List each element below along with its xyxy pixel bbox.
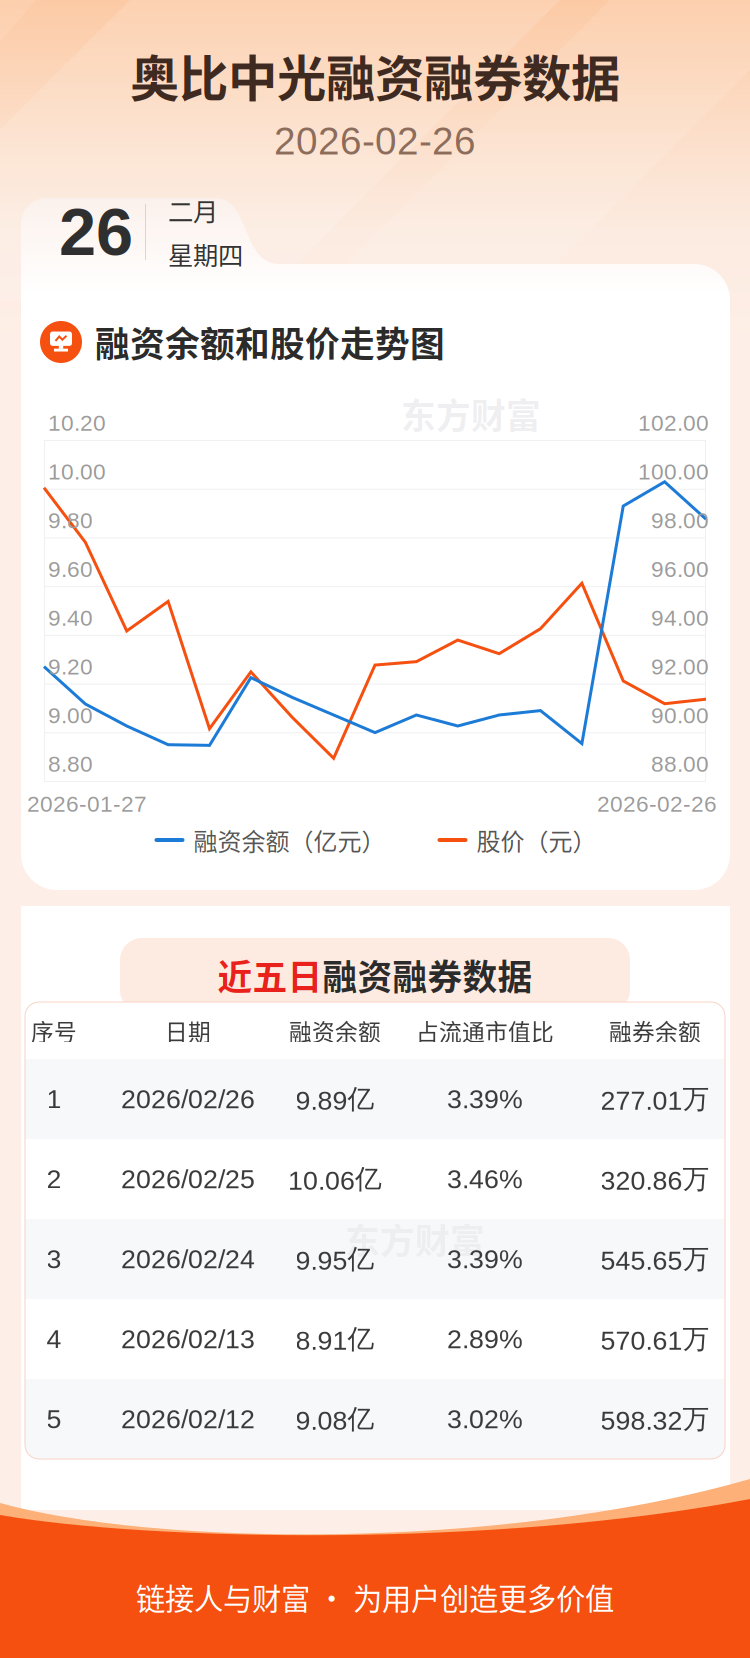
staticText: 股价（元）	[476, 823, 596, 857]
staticText: 88.00	[651, 751, 709, 777]
staticText: 日期	[165, 1014, 211, 1047]
staticText: 2026/02/13	[121, 1324, 255, 1354]
staticText: 1	[46, 1084, 61, 1114]
staticText: 10.00	[48, 459, 106, 484]
staticText: 9.08亿	[295, 1402, 374, 1436]
staticText: 570.61万	[600, 1322, 709, 1356]
staticText: 奥比中光融资融券数据	[130, 39, 620, 111]
staticText: 98.00	[651, 508, 709, 533]
staticText: 598.32万	[600, 1402, 709, 1436]
staticText: 2026-02-26	[274, 119, 476, 163]
staticText: 2026/02/12	[121, 1404, 255, 1434]
staticText: 102.00	[638, 410, 709, 436]
staticText: 3.39%	[447, 1084, 523, 1114]
staticText: 星期四	[168, 235, 243, 272]
staticText: 序号	[31, 1014, 77, 1047]
staticText: 融资融券数据	[322, 950, 532, 1000]
staticText: 320.86万	[600, 1162, 709, 1196]
staticText: 3.02%	[447, 1404, 523, 1434]
staticText: 链接人与财富 · 为用户创造更多价值	[136, 1576, 614, 1618]
staticText: 2026/02/25	[121, 1164, 255, 1194]
staticText: 融资余额和股价走势图	[95, 317, 445, 367]
staticText: 3.46%	[447, 1164, 523, 1194]
staticText: 9.89亿	[295, 1082, 374, 1116]
staticText: 9.60	[48, 556, 93, 582]
staticText: 5	[46, 1404, 61, 1434]
staticText: 8.80	[48, 751, 93, 777]
staticText: 3	[46, 1244, 61, 1274]
staticText: 9.00	[48, 703, 93, 728]
staticText: 2026/02/24	[121, 1244, 255, 1274]
staticText: 融券余额	[609, 1014, 701, 1047]
staticText: 2	[46, 1164, 61, 1194]
staticText: 2.89%	[447, 1324, 523, 1354]
staticText: 东方财富	[345, 1214, 485, 1264]
staticText: 90.00	[651, 703, 709, 728]
staticText: 9.80	[48, 508, 93, 533]
staticText: 2026-01-27	[27, 791, 147, 817]
staticText: 8.91亿	[295, 1322, 374, 1356]
staticText: 277.01万	[600, 1082, 709, 1116]
staticText: 融资余额（亿元）	[193, 823, 385, 857]
staticText: 100.00	[638, 459, 709, 484]
staticText: 10.06亿	[288, 1162, 382, 1196]
staticText: 融资余额	[289, 1014, 381, 1047]
staticText: 26	[59, 195, 133, 269]
staticText: 94.00	[651, 605, 709, 630]
staticText: 9.95亿	[295, 1242, 374, 1276]
staticText: 545.65万	[600, 1242, 709, 1276]
staticText: 东方财富	[401, 389, 541, 439]
staticText: 近五日	[217, 950, 322, 1000]
staticText: 2026/02/26	[121, 1084, 255, 1114]
staticText: 10.20	[48, 410, 106, 436]
staticText: 3.39%	[447, 1244, 523, 1274]
staticText: 二月	[168, 192, 218, 228]
staticText: 96.00	[651, 556, 709, 582]
staticText: 9.20	[48, 654, 93, 679]
staticText: 2026-02-26	[597, 791, 717, 817]
staticText: 占流通市值比	[416, 1014, 554, 1047]
staticText: 92.00	[651, 654, 709, 679]
staticText: 4	[46, 1324, 61, 1354]
staticText: 9.40	[48, 605, 93, 630]
